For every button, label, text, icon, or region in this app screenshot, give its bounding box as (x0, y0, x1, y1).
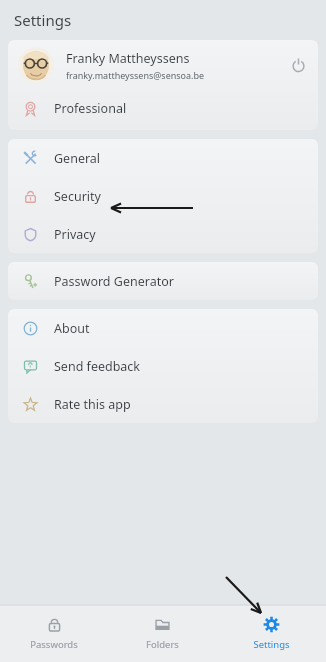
button[interactable]: Folders (108, 605, 217, 662)
button[interactable]: Privacy (8, 215, 318, 253)
button[interactable]: Franky Mattheyssens (8, 40, 318, 90)
staticText: Password Generator (54, 273, 174, 290)
button[interactable]: About (8, 309, 318, 347)
staticText: Security (54, 188, 101, 205)
button[interactable]: Settings (217, 605, 326, 662)
staticText: Professional (54, 100, 127, 117)
button[interactable]: Passwords (0, 605, 108, 662)
button[interactable]: General (8, 139, 318, 177)
button[interactable]: Password Generator (8, 262, 318, 300)
staticText: Settings (253, 638, 290, 651)
staticText: franky.mattheyssens@sensoa.be (66, 69, 205, 81)
button[interactable]: Rate this app (8, 385, 318, 423)
staticText: Settings (14, 10, 72, 30)
staticText: Rate this app (54, 396, 131, 413)
staticText: Passwords (30, 638, 78, 651)
button[interactable]: Security (8, 177, 318, 215)
staticText: Folders (146, 638, 179, 651)
button[interactable]: Sign out (278, 45, 318, 85)
button[interactable]: Send feedback (8, 347, 318, 385)
staticText: About (54, 320, 90, 337)
staticText: General (54, 150, 101, 167)
staticText: Privacy (54, 226, 96, 243)
staticText: Franky Mattheyssens (66, 50, 190, 67)
staticText: Send feedback (54, 358, 141, 375)
button[interactable]: Professional (8, 90, 318, 126)
